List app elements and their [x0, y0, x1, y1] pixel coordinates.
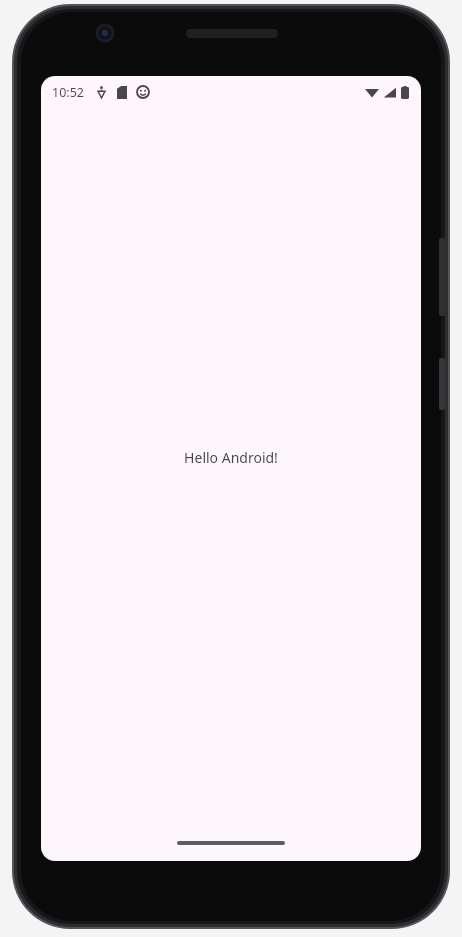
button[interactable]: Home gesture handle — [177, 841, 285, 845]
staticText: 10:52 — [52, 84, 84, 101]
staticText: Hello Android! — [184, 448, 278, 467]
